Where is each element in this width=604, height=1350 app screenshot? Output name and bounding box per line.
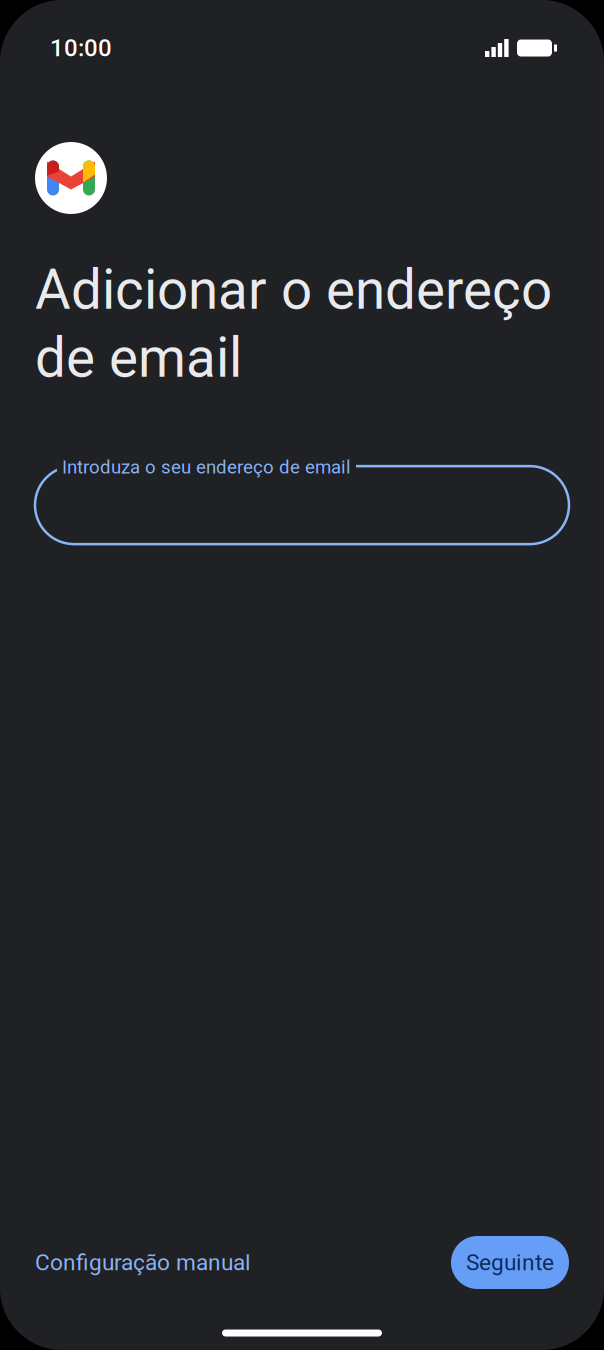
- button[interactable]: Configuração manual: [35, 1249, 251, 1276]
- button[interactable]: Introduza o seu endereço de email: [35, 466, 569, 544]
- staticText: Seguinte: [466, 1249, 554, 1276]
- staticText: Introduza o seu endereço de email: [62, 456, 351, 478]
- staticText: de email: [35, 326, 242, 390]
- staticText: Configuração manual: [35, 1249, 251, 1276]
- button[interactable]: Seguinte: [451, 1236, 569, 1289]
- staticText: 10:00: [50, 34, 112, 62]
- staticText: Adicionar o endereço: [35, 258, 552, 322]
